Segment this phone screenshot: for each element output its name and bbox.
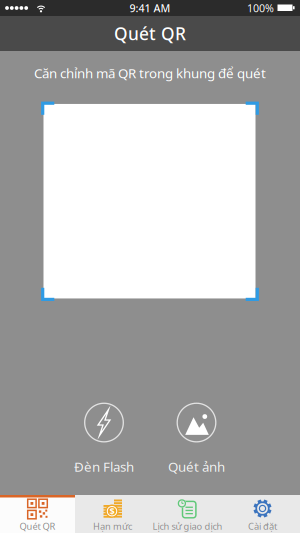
staticText: 100%: [247, 1, 274, 15]
staticText: Lịch sử giao dịch: [152, 520, 222, 532]
staticText: $: [109, 505, 114, 517]
button[interactable]: Quét ảnh: [168, 403, 225, 475]
staticText: Quét QR: [19, 520, 55, 532]
button[interactable]: Cài đặt: [225, 495, 300, 533]
button[interactable]: Đèn Flash: [74, 403, 134, 475]
button[interactable]: Quét QR: [0, 495, 75, 533]
staticText: Hạn mức: [93, 520, 132, 532]
button[interactable]: Lịch sử giao dịch: [150, 495, 225, 533]
staticText: Cài đặt: [248, 520, 277, 532]
staticText: Quét QR: [114, 22, 186, 45]
staticText: Đèn Flash: [74, 458, 134, 475]
staticText: Quét ảnh: [168, 458, 225, 475]
staticText: 9:41 AM: [129, 1, 170, 15]
button[interactable]: $: [75, 495, 150, 533]
staticText: Căn chỉnh mã QR trong khung để quét: [34, 64, 266, 82]
